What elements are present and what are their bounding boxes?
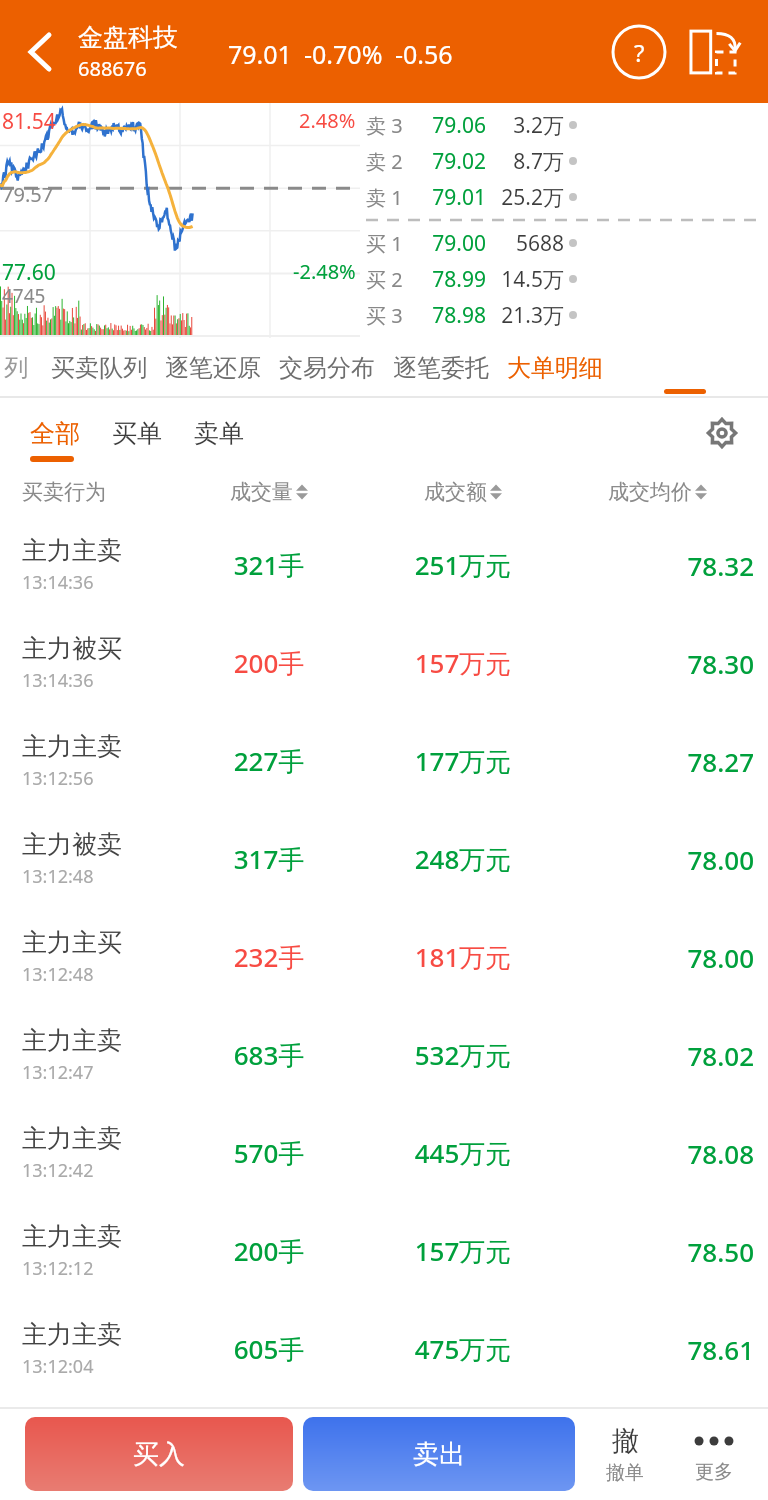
staticText: 81.54 <box>2 107 56 136</box>
staticText: 79.57 <box>2 181 54 208</box>
staticText: 卖单 <box>194 418 244 449</box>
button[interactable]: 交易分布 <box>270 353 384 383</box>
staticText: 卖 3 <box>366 112 418 139</box>
button[interactable]: 主力主买 <box>0 908 768 1006</box>
staticText: 475万元 <box>366 1331 560 1367</box>
staticText: 成交均价 <box>608 479 692 505</box>
staticText: 21.3万 <box>486 301 564 330</box>
staticText: 157万元 <box>366 1233 560 1269</box>
button[interactable]: 买卖队列 <box>42 353 156 383</box>
staticText: 79.06 <box>418 111 486 140</box>
button[interactable]: Help <box>610 23 668 81</box>
staticText: 3.2万 <box>486 111 564 140</box>
staticText: 570手 <box>172 1135 366 1171</box>
staticText: 买 1 <box>366 230 418 257</box>
button[interactable]: 卖 3 <box>366 107 768 143</box>
staticText: 5688 <box>486 229 564 258</box>
staticText: 177万元 <box>366 743 560 779</box>
staticText: 445万元 <box>366 1135 560 1171</box>
staticText: 79.02 <box>418 147 486 176</box>
staticText: -0.56 <box>395 37 453 71</box>
staticText: 大单明细 <box>507 353 603 383</box>
staticText: 317手 <box>172 841 366 877</box>
button[interactable]: 撤 <box>581 1417 669 1491</box>
staticText: 逐笔委托 <box>393 353 489 383</box>
button[interactable]: 逐笔还原 <box>156 353 270 383</box>
button[interactable]: 主力被卖 <box>0 810 768 908</box>
staticText: 157万元 <box>366 645 560 681</box>
staticText: 成交额 <box>424 479 487 505</box>
staticText: 主力主卖 <box>22 1025 122 1056</box>
staticText: 78.98 <box>418 301 486 330</box>
staticText: 卖出 <box>413 1438 465 1471</box>
button[interactable]: Settings <box>698 409 746 457</box>
staticText: 77.60 <box>2 258 56 287</box>
staticText: 227手 <box>172 743 366 779</box>
button[interactable]: 全部 <box>14 412 96 455</box>
button[interactable]: 主力主卖 <box>0 712 768 810</box>
staticText: 主力主买 <box>22 927 122 958</box>
button[interactable]: 买 2 <box>366 261 768 297</box>
staticText: 78.02 <box>560 1038 754 1073</box>
staticText: 79.01 <box>228 37 292 71</box>
staticText: 25.2万 <box>486 183 564 212</box>
staticText: 主力主卖 <box>22 1319 122 1350</box>
staticText: 78.50 <box>560 1234 754 1269</box>
button[interactable]: 大单明细 <box>498 353 612 383</box>
staticText: 主力主卖 <box>22 1123 122 1154</box>
staticText: 撤单 <box>606 1461 644 1485</box>
staticText: 78.00 <box>560 940 754 975</box>
button[interactable]: 卖出 <box>303 1417 575 1491</box>
staticText: 13:12:42 <box>22 1158 94 1183</box>
staticText: 买单 <box>112 418 162 449</box>
staticText: 251万元 <box>366 547 560 583</box>
button[interactable]: 卖 2 <box>366 143 768 179</box>
button[interactable]: Back <box>12 24 68 80</box>
button[interactable]: 主力被买 <box>0 614 768 712</box>
staticText: 688676 <box>78 55 147 82</box>
staticText: 13:14:36 <box>22 668 94 693</box>
staticText: 2.48% <box>299 107 356 134</box>
staticText: 金盘科技 <box>78 22 178 53</box>
staticText: 232手 <box>172 939 366 975</box>
staticText: 主力主卖 <box>22 1221 122 1252</box>
button[interactable]: 买 1 <box>366 225 768 261</box>
button[interactable]: 买入 <box>25 1417 293 1491</box>
staticText: 78.08 <box>560 1136 754 1171</box>
button[interactable]: 买 3 <box>366 297 768 333</box>
staticText: 13:12:12 <box>22 1256 94 1281</box>
button[interactable]: Switch layout <box>684 23 742 81</box>
button[interactable]: 成交均价 <box>560 479 754 505</box>
button[interactable]: 主力主卖 <box>0 1202 768 1300</box>
staticText: 交易分布 <box>279 353 375 383</box>
staticText: 200手 <box>172 1233 366 1269</box>
staticText: -2.48% <box>293 258 356 285</box>
staticText: -0.70% <box>304 37 383 71</box>
staticText: 买卖队列 <box>51 353 147 383</box>
button[interactable]: 更多 <box>669 1417 758 1491</box>
staticText: 79.00 <box>418 229 486 258</box>
staticText: 逐笔还原 <box>165 353 261 383</box>
staticText: 13:14:36 <box>22 570 94 595</box>
button[interactable]: 卖 1 <box>366 179 768 215</box>
button[interactable]: 买单 <box>96 412 178 455</box>
button[interactable]: 主力主卖 <box>0 1006 768 1104</box>
staticText: 买 3 <box>366 302 418 329</box>
staticText: 买 2 <box>366 266 418 293</box>
button[interactable]: 卖单 <box>178 412 260 455</box>
button[interactable]: 主力主卖 <box>0 1104 768 1202</box>
staticText: 78.30 <box>560 646 754 681</box>
button[interactable]: 逐笔委托 <box>384 353 498 383</box>
button[interactable]: 成交额 <box>366 479 560 505</box>
staticText: ? <box>634 36 645 69</box>
staticText: 买卖行为 <box>22 479 172 505</box>
staticText: 主力被卖 <box>22 829 122 860</box>
button[interactable]: 主力主卖 <box>0 516 768 614</box>
staticText: 全部 <box>30 418 80 449</box>
button[interactable]: 成交量 <box>172 479 366 505</box>
button[interactable]: 主力主卖 <box>0 1300 768 1398</box>
staticText: 13:12:04 <box>22 1354 94 1379</box>
staticText: 683手 <box>172 1037 366 1073</box>
staticText: 主力主卖 <box>22 731 122 762</box>
staticText: 13:12:56 <box>22 766 94 791</box>
